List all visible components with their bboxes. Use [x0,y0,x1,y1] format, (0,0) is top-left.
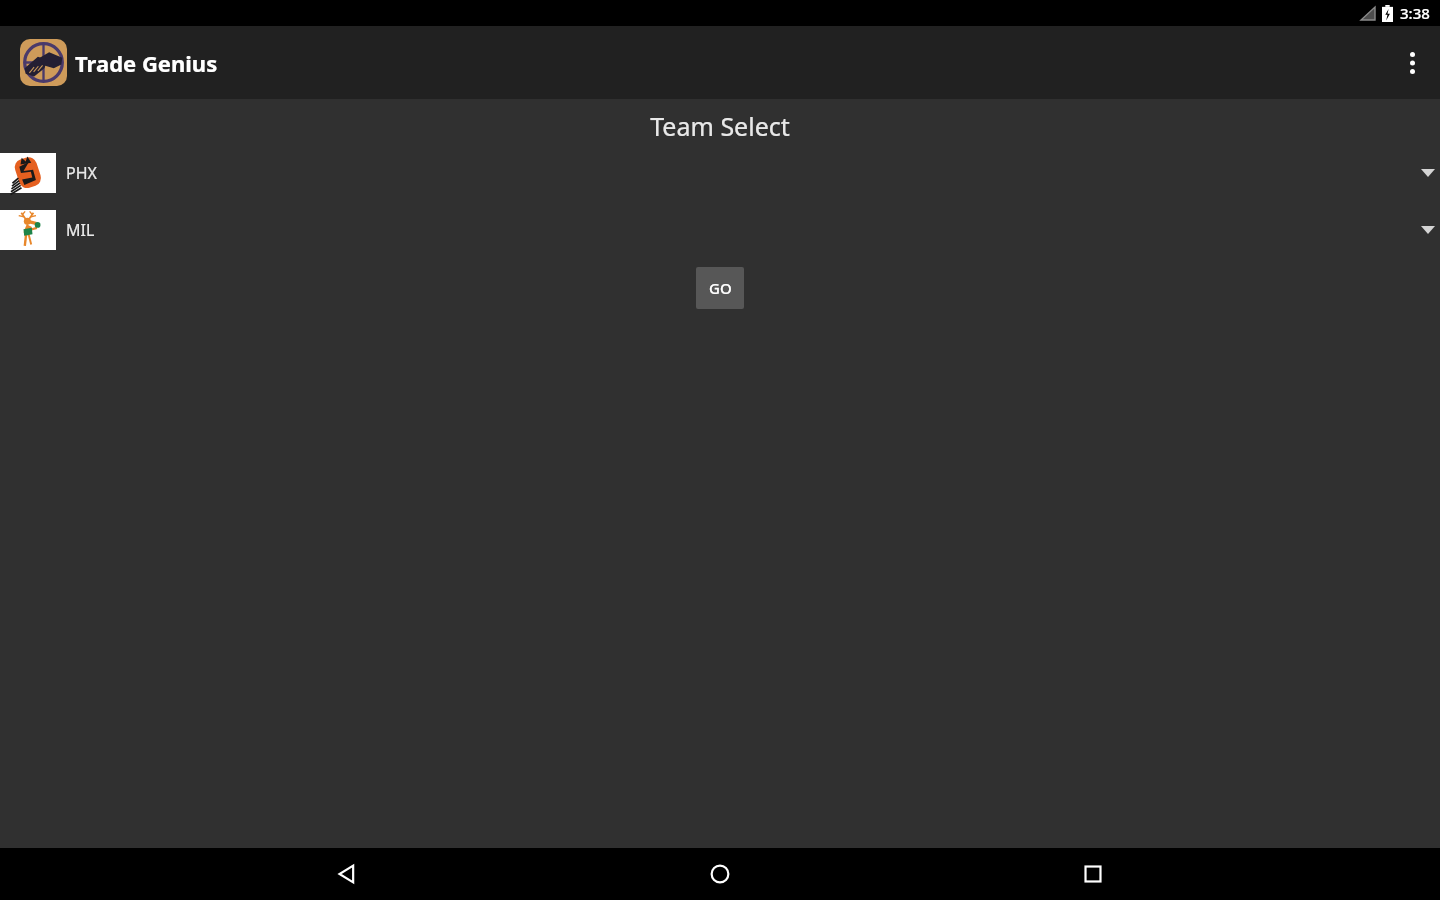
button[interactable]: Recent apps [1067,848,1119,900]
staticText: MIL [66,219,95,241]
button[interactable]: More options [1384,35,1440,91]
staticText: PHX [66,162,97,184]
button[interactable]: Home [694,848,746,900]
staticText: 3:38 [1400,3,1430,23]
staticText: GO [709,278,732,298]
staticText: Trade Genius [75,48,218,78]
button[interactable]: MIL [0,210,1440,250]
button[interactable]: GO [696,267,744,309]
staticText: Team Select [0,109,1440,143]
button[interactable]: Back [321,848,373,900]
button[interactable]: PHX [0,153,1440,193]
